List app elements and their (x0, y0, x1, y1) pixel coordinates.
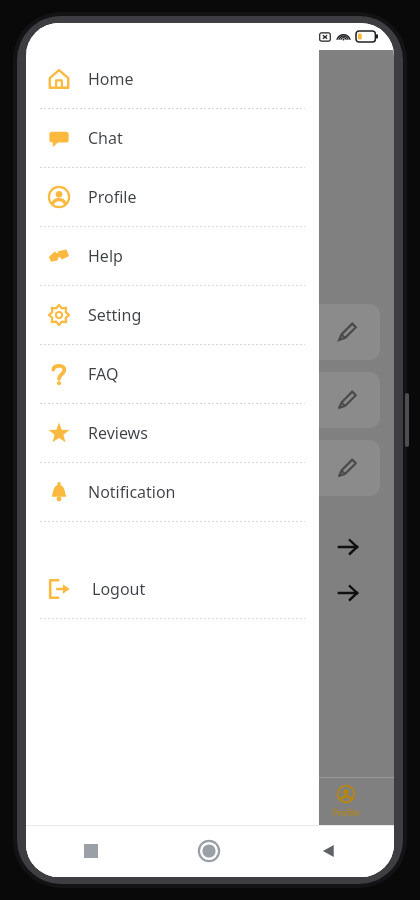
button[interactable]: Help (26, 227, 319, 285)
button[interactable]: Edit (336, 389, 358, 411)
button[interactable]: Edit (42, 372, 380, 428)
staticText: Chat (88, 127, 123, 149)
staticText: Profile (88, 186, 137, 208)
button[interactable]: Profile (326, 781, 366, 822)
button[interactable]: FAQ (26, 345, 319, 403)
staticText: Help (88, 245, 123, 267)
staticText: FAQ (88, 363, 119, 385)
other: Open (336, 535, 360, 559)
button[interactable]: Setting (26, 286, 319, 344)
button[interactable]: Edit (336, 321, 358, 343)
button[interactable]: Reviews (26, 404, 319, 462)
staticText: Reviews (88, 422, 148, 444)
button[interactable]: Open (42, 524, 380, 570)
button[interactable]: Profile (26, 168, 319, 226)
button[interactable]: Edit (42, 304, 380, 360)
staticText: Notification (88, 481, 176, 503)
button[interactable]: Logout (26, 560, 319, 618)
button[interactable]: Edit (336, 457, 358, 479)
button[interactable]: Chat (26, 109, 319, 167)
button[interactable]: Open (42, 570, 380, 616)
staticText: Setting (88, 304, 142, 326)
staticText: Home (88, 68, 134, 90)
staticText: Logout (92, 578, 146, 600)
button[interactable]: Notification (26, 463, 319, 521)
other: Open (336, 581, 360, 605)
button[interactable]: Home (198, 840, 220, 862)
button[interactable]: Home (26, 50, 319, 108)
button[interactable]: Edit (42, 440, 380, 496)
staticText: Profile (332, 806, 360, 818)
button[interactable]: Back (320, 843, 336, 859)
